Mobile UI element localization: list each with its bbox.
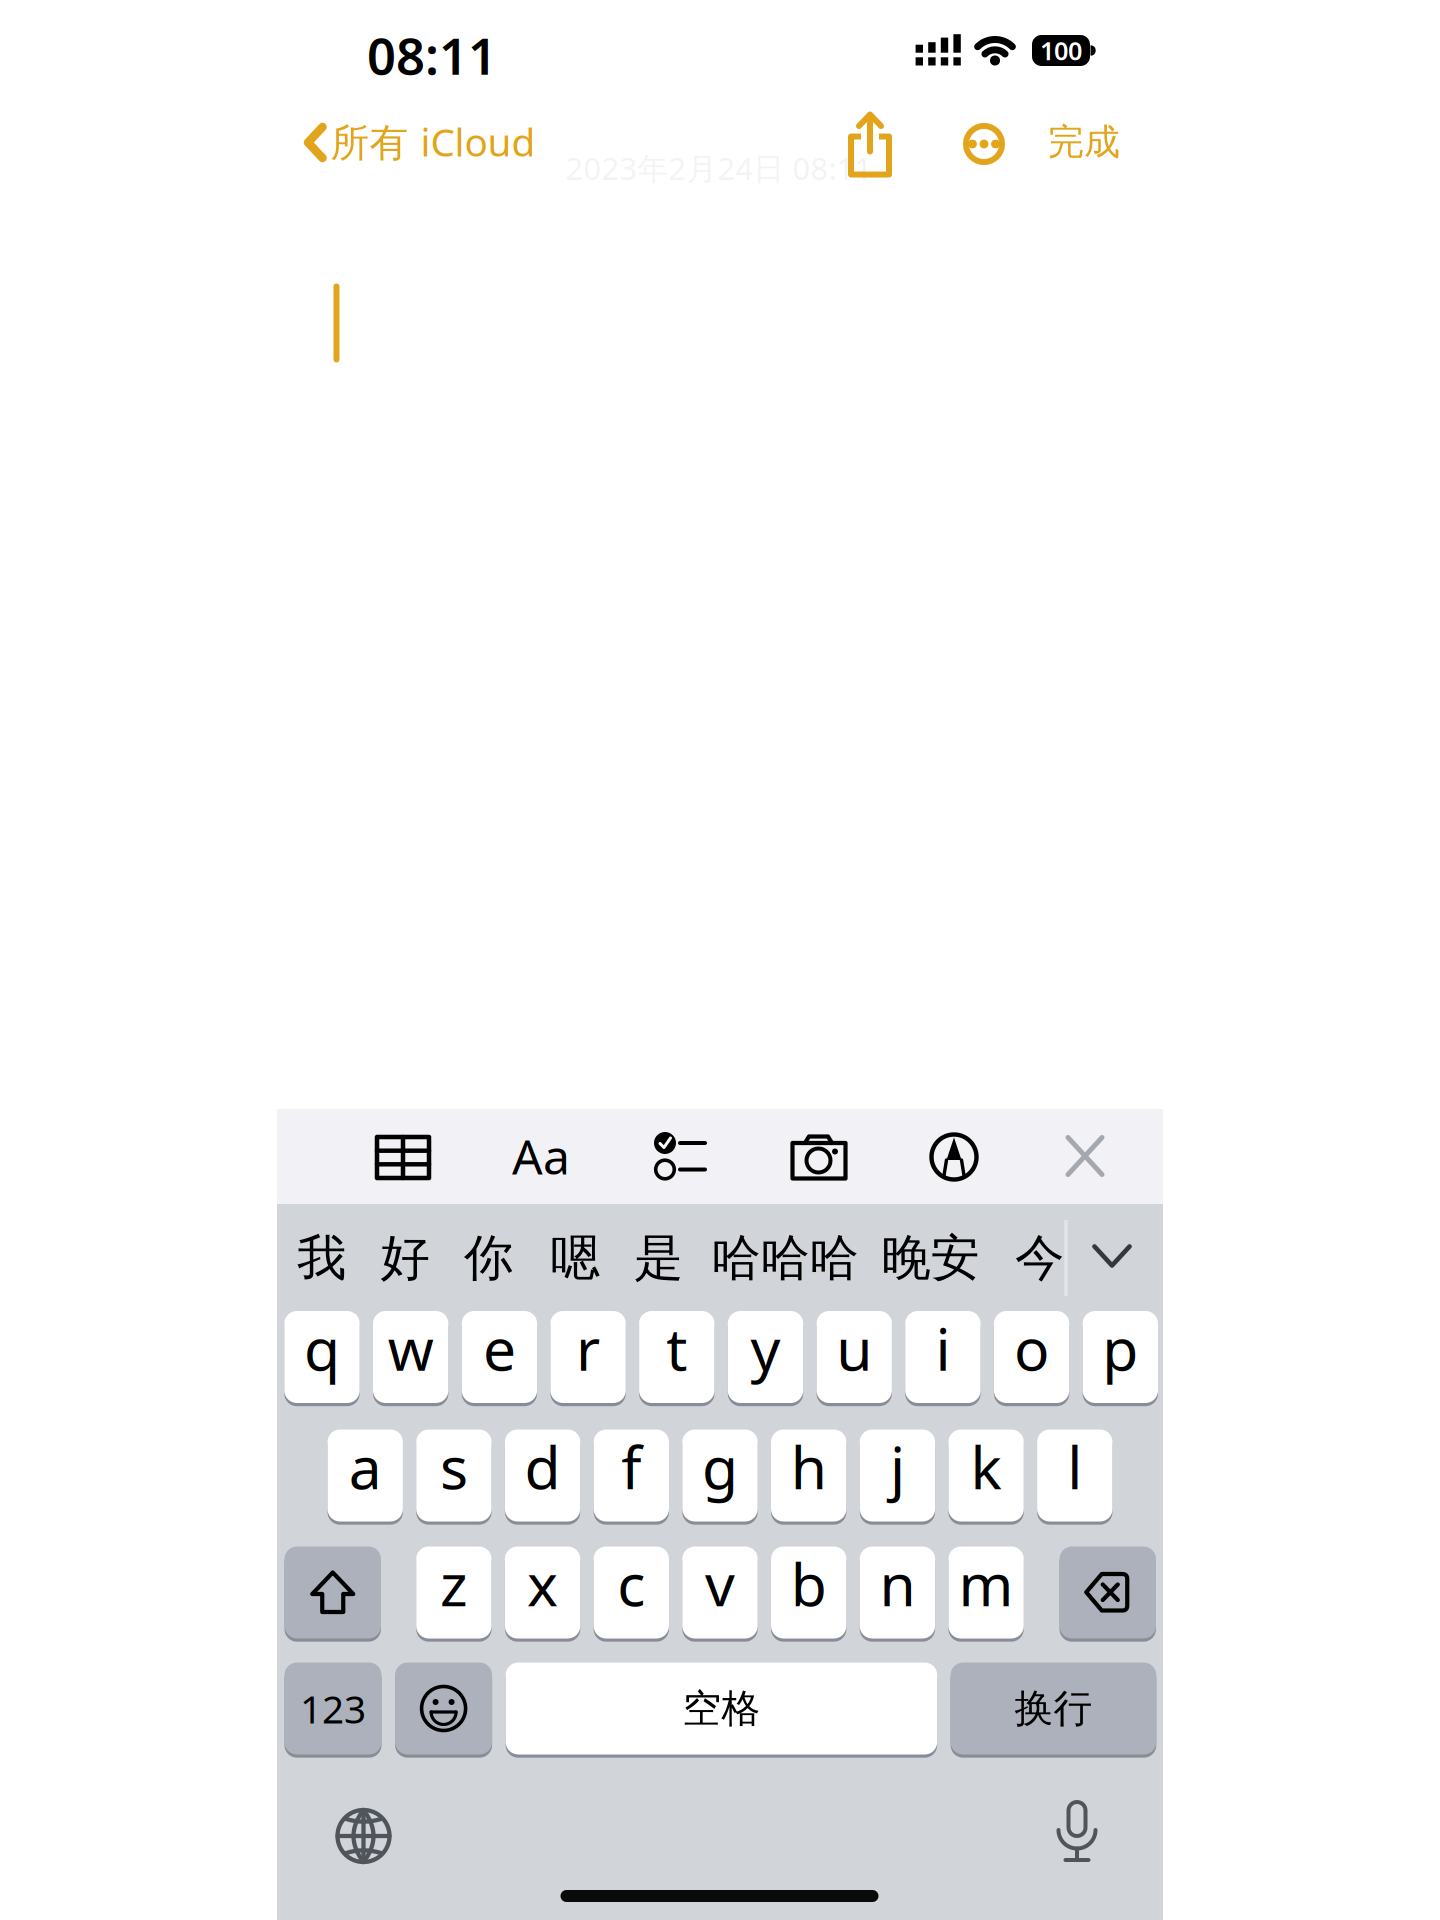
staticText: 哈哈哈: [711, 1228, 858, 1288]
staticText: v: [705, 1544, 735, 1622]
button[interactable]: d: [505, 1427, 580, 1523]
button[interactable]: 换行: [951, 1660, 1156, 1756]
button[interactable]: Shift: [284, 1544, 381, 1640]
staticText: q: [304, 1309, 340, 1387]
button[interactable]: z: [416, 1544, 492, 1640]
staticText: a: [349, 1427, 382, 1505]
staticText: s: [440, 1427, 468, 1505]
button[interactable]: 嗯: [550, 1215, 599, 1301]
staticText: 晚安: [881, 1228, 979, 1288]
staticText: u: [836, 1309, 872, 1387]
staticText: 我: [297, 1228, 346, 1288]
staticText: 08:11: [367, 21, 497, 89]
button[interactable]: y: [728, 1309, 803, 1405]
button[interactable]: c: [594, 1544, 669, 1640]
button[interactable]: 共享: [838, 108, 902, 184]
button[interactable]: s: [416, 1427, 492, 1523]
button[interactable]: 表情符号: [395, 1660, 492, 1756]
button[interactable]: u: [816, 1309, 892, 1405]
button[interactable]: v: [682, 1544, 758, 1640]
button[interactable]: 听写: [1055, 1799, 1099, 1867]
staticText: z: [440, 1544, 468, 1622]
button[interactable]: 收起键盘: [1063, 1132, 1107, 1179]
button[interactable]: p: [1083, 1309, 1158, 1405]
staticText: y: [750, 1309, 780, 1387]
staticText: 换行: [1014, 1685, 1092, 1732]
staticText: w: [388, 1309, 434, 1387]
button[interactable]: 数字: [284, 1660, 381, 1756]
button[interactable]: 更多: [954, 114, 1014, 174]
button[interactable]: 格式: [501, 1126, 581, 1186]
staticText: k: [971, 1427, 1002, 1505]
button[interactable]: j: [860, 1427, 935, 1523]
button[interactable]: 晚安: [881, 1215, 979, 1301]
button[interactable]: 下一个键盘: [331, 1804, 395, 1868]
button[interactable]: q: [284, 1309, 360, 1405]
staticText: t: [666, 1309, 687, 1387]
button[interactable]: e: [462, 1309, 537, 1405]
staticText: r: [576, 1309, 600, 1387]
button[interactable]: 核对清单: [652, 1131, 708, 1183]
button[interactable]: x: [505, 1544, 580, 1640]
button[interactable]: l: [1037, 1427, 1112, 1523]
button[interactable]: f: [594, 1427, 669, 1523]
staticText: 是: [634, 1228, 683, 1288]
staticText: p: [1102, 1309, 1138, 1387]
staticText: g: [702, 1427, 738, 1505]
button[interactable]: 删除: [1059, 1544, 1156, 1640]
staticText: 今: [1015, 1228, 1064, 1288]
button[interactable]: 我: [297, 1215, 346, 1301]
staticText: d: [525, 1427, 561, 1505]
staticText: 你: [464, 1228, 513, 1288]
button[interactable]: 表格: [374, 1132, 432, 1182]
button[interactable]: 哈哈哈: [711, 1215, 858, 1301]
staticText: 100: [1040, 34, 1082, 67]
button[interactable]: a: [327, 1427, 403, 1523]
button[interactable]: 返回 所有 iCloud: [298, 106, 548, 176]
staticText: 好: [380, 1228, 429, 1288]
staticText: n: [879, 1544, 915, 1622]
staticText: 完成: [1048, 120, 1120, 164]
staticText: j: [890, 1427, 905, 1505]
button[interactable]: b: [771, 1544, 846, 1640]
staticText: m: [959, 1544, 1014, 1622]
button[interactable]: 好: [380, 1215, 429, 1301]
button[interactable]: 拍照: [789, 1132, 849, 1182]
staticText: o: [1014, 1309, 1049, 1387]
staticText: h: [791, 1427, 827, 1505]
staticText: 嗯: [550, 1228, 599, 1288]
staticText: x: [527, 1544, 558, 1622]
staticText: f: [621, 1427, 641, 1505]
staticText: l: [1067, 1427, 1082, 1505]
staticText: 2023年2月24日 08:11: [565, 148, 872, 188]
button[interactable]: r: [550, 1309, 626, 1405]
staticText: i: [935, 1309, 950, 1387]
staticText: c: [617, 1544, 645, 1622]
button[interactable]: h: [771, 1427, 846, 1523]
staticText: 123: [300, 1683, 366, 1734]
button[interactable]: k: [948, 1427, 1024, 1523]
staticText: Aa: [512, 1124, 570, 1188]
button[interactable]: 展开候选字: [1090, 1241, 1133, 1270]
staticText: e: [483, 1309, 516, 1387]
button[interactable]: 你: [464, 1215, 513, 1301]
button[interactable]: o: [994, 1309, 1069, 1405]
staticText: b: [791, 1544, 827, 1622]
button[interactable]: t: [639, 1309, 714, 1405]
button[interactable]: 完成: [1029, 110, 1139, 174]
button[interactable]: 标记: [928, 1131, 980, 1183]
button[interactable]: g: [682, 1427, 758, 1523]
staticText: 所有 iCloud: [330, 116, 535, 167]
staticText: 空格: [682, 1685, 760, 1732]
button[interactable]: w: [373, 1309, 448, 1405]
button[interactable]: m: [948, 1544, 1024, 1640]
button[interactable]: i: [905, 1309, 981, 1405]
button[interactable]: 是: [634, 1215, 683, 1301]
button[interactable]: 今: [1015, 1215, 1064, 1301]
button[interactable]: n: [860, 1544, 935, 1640]
button[interactable]: 空格: [506, 1660, 937, 1756]
